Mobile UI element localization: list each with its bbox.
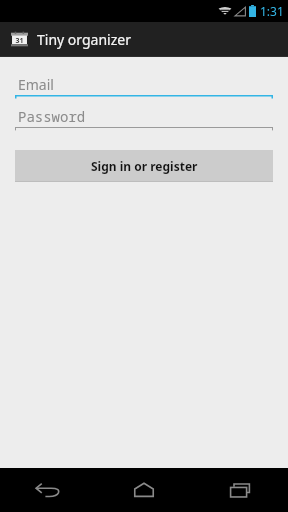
button[interactable]: Sign in or register (15, 150, 273, 181)
staticText: 1:31 (260, 3, 284, 19)
staticText: Sign in or register (91, 158, 198, 174)
staticText: Email (18, 75, 54, 94)
button[interactable]: Back (0, 468, 96, 512)
button[interactable]: Email (15, 74, 273, 99)
button[interactable]: Password (15, 106, 273, 131)
button[interactable]: Home (96, 468, 192, 512)
button[interactable]: Recent apps (192, 468, 288, 512)
staticText: Tiny organizer (37, 30, 131, 49)
staticText: 31 (15, 36, 24, 46)
staticText: Password (18, 107, 86, 126)
